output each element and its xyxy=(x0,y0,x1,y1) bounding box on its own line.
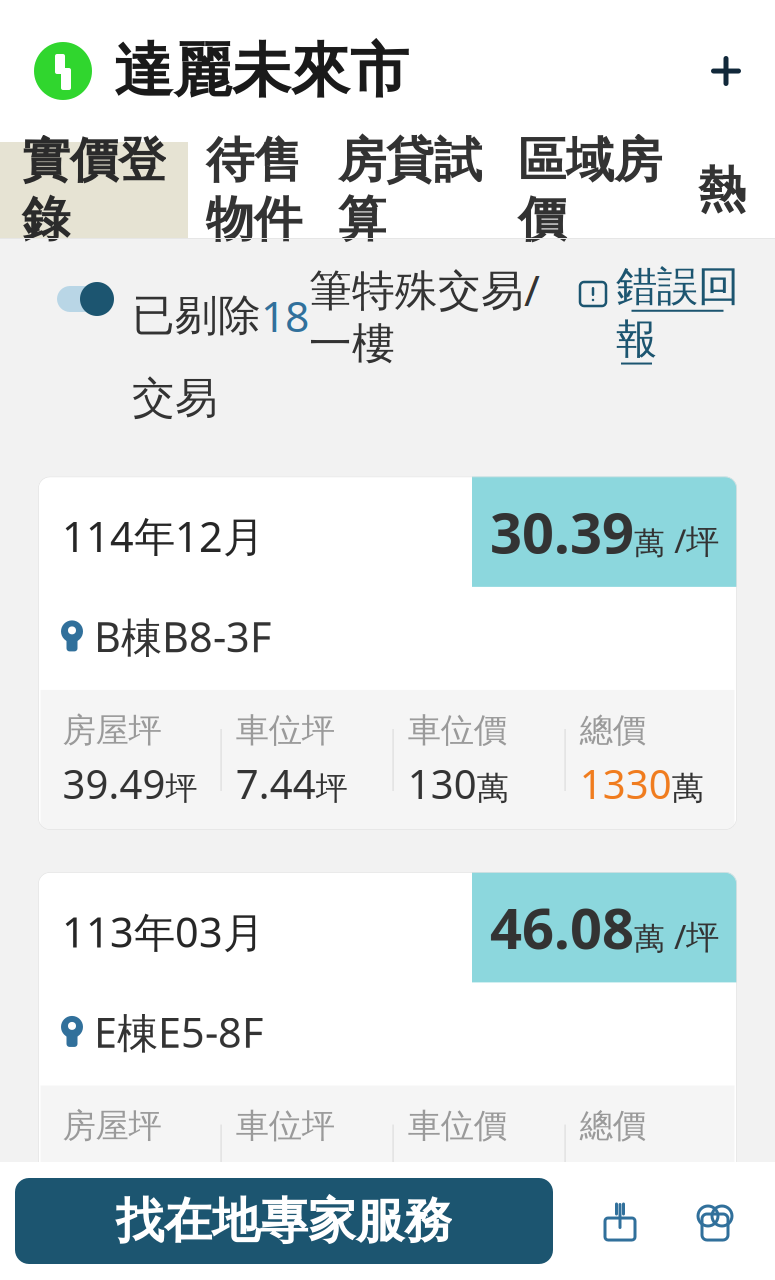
staticText: 找在地專家服務 xyxy=(116,1191,452,1250)
staticText: 交易 xyxy=(132,372,218,424)
staticText: 1085 xyxy=(580,1152,672,1205)
button[interactable]: 房貸試算 xyxy=(320,142,500,238)
staticText: 達麗未來市 xyxy=(114,35,409,107)
button[interactable]: 錯誤回 xyxy=(578,261,739,364)
staticText: 130 xyxy=(408,757,477,810)
button[interactable]: 剔除特殊交易 xyxy=(52,261,116,317)
button[interactable]: 分享 xyxy=(601,1200,639,1242)
staticText: 熱 xyxy=(698,160,746,219)
staticText: 20.51 xyxy=(62,1152,165,1205)
staticText: 坪 xyxy=(165,769,197,808)
staticText: 坪 xyxy=(316,1164,348,1203)
staticText: E棟E5-8F xyxy=(94,1004,263,1059)
staticText: 實價登錄 xyxy=(22,131,166,249)
staticText: 140 xyxy=(408,1152,477,1205)
staticText: 114年12月 xyxy=(62,508,264,563)
staticText: 總價 xyxy=(580,1105,646,1146)
button[interactable]: 待售物件 xyxy=(188,142,320,238)
staticText: 46.08 xyxy=(490,890,634,964)
staticText: 18 xyxy=(261,287,309,344)
staticText: /坪 xyxy=(665,914,719,958)
staticText: 7.44 xyxy=(236,1152,316,1205)
staticText: 萬 xyxy=(477,1164,509,1203)
staticText: 房屋坪 xyxy=(62,710,161,751)
staticText: 30.39 xyxy=(490,494,634,569)
button[interactable]: 實價登錄 xyxy=(0,142,188,238)
staticText: 房屋坪 xyxy=(62,1105,161,1146)
staticText: 筆特殊交易/一樓 xyxy=(309,261,540,370)
staticText: 113年03月 xyxy=(62,904,264,959)
staticText: 報 xyxy=(616,314,657,365)
button[interactable]: 區域房價 xyxy=(500,142,680,238)
staticText: /坪 xyxy=(665,518,719,563)
button[interactable]: 113年03月 xyxy=(38,872,737,1225)
button[interactable]: 114年12月 xyxy=(38,476,737,830)
staticText: 房貸試算 xyxy=(338,131,482,249)
staticText: 萬 xyxy=(672,769,704,808)
staticText: 區域房價 xyxy=(518,131,662,249)
staticText: 總價 xyxy=(580,710,646,751)
staticText: 7.44 xyxy=(236,757,316,810)
staticText: B棟B8-3F xyxy=(94,609,271,664)
staticText: 車位坪 xyxy=(236,1105,335,1146)
staticText: 已剔除 xyxy=(132,289,261,342)
staticText: 39.49 xyxy=(62,757,165,810)
button[interactable]: 關閉 xyxy=(709,54,775,88)
staticText: 坪 xyxy=(165,1164,197,1203)
staticText: 錯誤回 xyxy=(616,261,739,312)
staticText: 萬 xyxy=(634,920,665,958)
staticText: 車位價 xyxy=(408,710,507,751)
button[interactable]: 找在地專家服務 xyxy=(15,1178,553,1264)
button[interactable]: 收藏 xyxy=(695,1202,735,1240)
staticText: 萬 xyxy=(477,769,509,808)
staticText: 車位坪 xyxy=(236,710,335,751)
staticText: 1330 xyxy=(580,757,672,810)
staticText: 坪 xyxy=(316,769,348,808)
staticText: 萬 xyxy=(634,524,665,562)
staticText: 車位價 xyxy=(408,1105,507,1146)
staticText: 待售物件 xyxy=(206,131,302,249)
button[interactable]: 熱 xyxy=(680,142,764,238)
